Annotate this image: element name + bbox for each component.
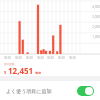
staticText: 00:00	[26, 56, 33, 60]
staticText: 00:00	[4, 56, 11, 60]
staticText: ¥	[4, 70, 7, 75]
staticText: 使用	[35, 71, 41, 75]
staticText: 2,000	[80, 25, 100, 29]
staticText: 00:00	[15, 56, 22, 60]
staticText: 1,000	[80, 35, 100, 39]
staticText: 4,000	[80, 5, 100, 9]
button[interactable]: よく使う項目に追加	[0, 81, 100, 100]
staticText: 12,451	[8, 65, 34, 76]
staticText: 00:00	[37, 56, 44, 60]
staticText: 00:00	[47, 56, 54, 60]
staticText: 合計金額	[4, 62, 15, 65]
staticText: 00:00	[58, 56, 65, 60]
staticText: 3,000	[80, 15, 100, 19]
button[interactable]: よく使う項目に追加 オン	[77, 86, 94, 96]
staticText: 00:00	[69, 56, 76, 60]
staticText: よく使う項目に追加	[6, 88, 52, 94]
